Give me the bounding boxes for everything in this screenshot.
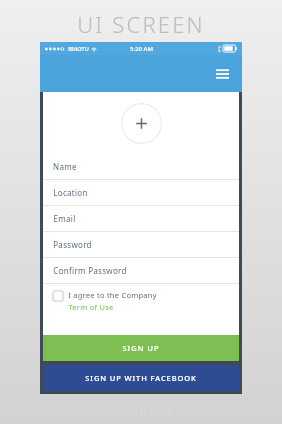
button[interactable]: Email: [43, 206, 239, 232]
staticText: Name: [53, 161, 77, 172]
button[interactable]: Name: [43, 154, 239, 180]
button[interactable]: SIGN UP WITH FACEBOOK: [43, 365, 239, 391]
button[interactable]: Open navigation menu: [212, 64, 232, 84]
button[interactable]: Password: [43, 232, 239, 258]
button[interactable]: I agree to the Company: [43, 284, 239, 326]
staticText: IBAOTU: [68, 45, 89, 52]
staticText: UI SCREEN: [77, 9, 205, 39]
staticText: Term of Use: [68, 302, 114, 312]
staticText: Email: [53, 213, 76, 224]
staticText: Location: [53, 187, 88, 198]
staticText: SIGN UP: [122, 343, 160, 353]
button[interactable]: SIGN UP: [43, 335, 239, 361]
staticText: I agree to the Company: [68, 290, 157, 300]
staticText: Password: [53, 239, 92, 250]
staticText: SIGN UP WITH FACEBOOK: [85, 373, 197, 383]
button[interactable]: Term of Use: [68, 302, 114, 312]
button[interactable]: Location: [43, 180, 239, 206]
button[interactable]: Add profile photo: [121, 103, 162, 144]
staticText: 5:20 AM: [130, 45, 153, 53]
staticText: Confirm Password: [53, 265, 127, 276]
button[interactable]: Confirm Password: [43, 258, 239, 284]
